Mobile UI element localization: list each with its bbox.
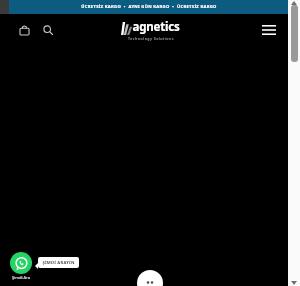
button[interactable]: agnetics (121, 19, 180, 41)
button[interactable]: Menu (258, 19, 280, 41)
button[interactable]: Chat (137, 270, 163, 286)
staticText: ÜCRETSİZ KARGO • AYNI GÜN KARGO • ÜCRETS… (81, 4, 217, 10)
staticText: Şimdi Ara (12, 275, 30, 280)
staticText: Technology Solutions (128, 36, 174, 41)
button[interactable]: Scrollbar (291, 5, 298, 62)
button[interactable]: Cart (14, 20, 34, 40)
staticText: ŞİMDİ ARAYIN (42, 260, 75, 266)
button[interactable]: WhatsApp (10, 252, 32, 280)
button[interactable]: ŞİMDİ ARAYIN (38, 257, 79, 268)
staticText: agnetics (132, 19, 180, 35)
button[interactable]: ÜCRETSİZ KARGO • AYNI GÜN KARGO • ÜCRETS… (0, 0, 300, 14)
button[interactable]: Search (38, 20, 58, 40)
